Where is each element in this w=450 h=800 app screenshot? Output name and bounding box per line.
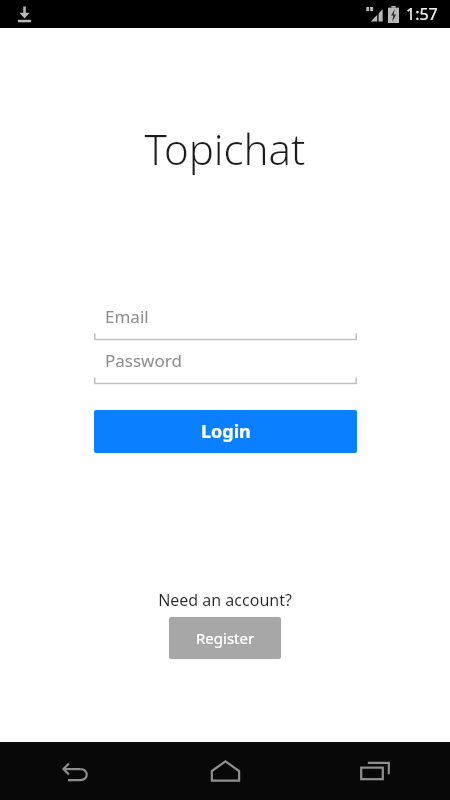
button[interactable]: Login bbox=[94, 410, 357, 453]
other: Download bbox=[17, 6, 32, 22]
button[interactable]: Back bbox=[0, 742, 150, 800]
staticText: Password bbox=[105, 349, 182, 372]
button[interactable]: Home bbox=[150, 742, 300, 800]
button[interactable]: Register bbox=[169, 617, 281, 659]
button[interactable]: Email bbox=[94, 303, 357, 341]
staticText: Register bbox=[196, 628, 255, 648]
staticText: Login bbox=[201, 419, 251, 444]
staticText: Need an account? bbox=[0, 589, 450, 611]
staticText: 1:57 bbox=[406, 3, 438, 25]
button[interactable]: Recent apps bbox=[300, 742, 450, 800]
button[interactable]: Password bbox=[94, 347, 357, 385]
staticText: Email bbox=[105, 305, 149, 328]
staticText: Topichat bbox=[0, 120, 450, 177]
